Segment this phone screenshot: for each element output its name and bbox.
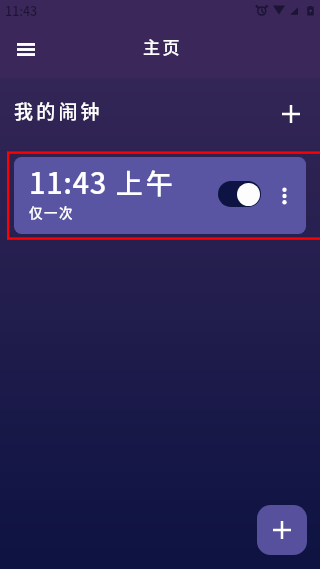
staticText: 11:43 上午 <box>29 160 176 202</box>
button[interactable]: Open navigation menu <box>5 29 46 70</box>
button[interactable]: 11:43 上午 <box>14 157 306 234</box>
button[interactable]: Add alarm <box>271 94 311 134</box>
button[interactable]: More options <box>270 182 298 210</box>
staticText: 仅一次 <box>29 202 74 222</box>
button[interactable]: Add new alarm <box>257 505 307 555</box>
staticText: 11:43 <box>5 1 38 19</box>
staticText: 主页 <box>143 34 182 59</box>
staticText: 我的闹钟 <box>14 97 103 125</box>
button[interactable]: Toggle alarm on or off <box>218 181 261 207</box>
